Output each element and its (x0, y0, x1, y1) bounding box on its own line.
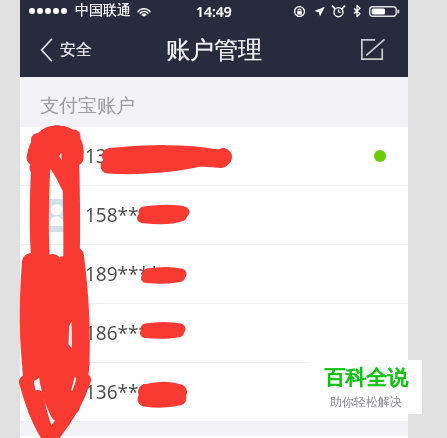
staticText: 助你轻松解决 (330, 394, 402, 409)
button[interactable]: 186**** (20, 304, 408, 362)
staticText: 支付宝账户 (40, 94, 135, 118)
staticText: 14:49 (196, 2, 232, 21)
staticText: 189**** (85, 261, 160, 287)
staticText: 安全 (60, 40, 92, 60)
staticText: 13 (85, 143, 107, 169)
staticText: 中国联通 (75, 2, 131, 20)
staticText: 158*** (85, 202, 150, 228)
button[interactable]: 安全 (20, 29, 106, 71)
button[interactable]: Edit (345, 27, 408, 72)
staticText: 136**** (85, 379, 160, 405)
button[interactable]: 136**** (20, 363, 408, 421)
button[interactable]: 13 (20, 127, 408, 185)
staticText: 账户管理 (166, 35, 262, 65)
button[interactable]: 158*** (20, 186, 408, 244)
staticText: 百科全说 (324, 365, 408, 391)
button[interactable]: 189**** (20, 245, 408, 303)
staticText: 186**** (85, 320, 160, 346)
